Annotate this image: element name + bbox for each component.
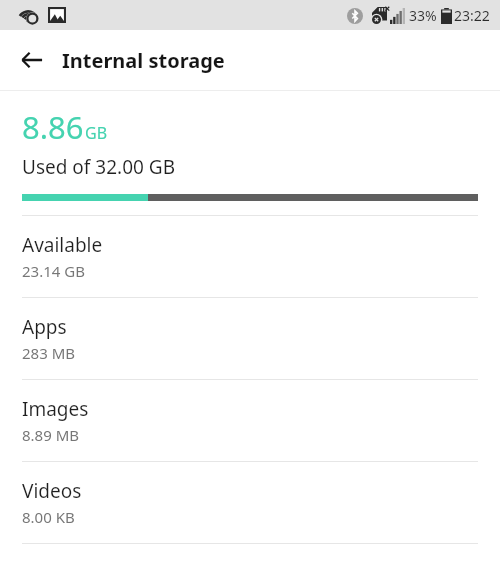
staticText: Videos [22,478,82,504]
staticText: 8.00 KB [22,507,75,527]
staticText: Apps [22,314,67,340]
staticText: 8.89 MB [22,425,80,445]
staticText: 33% [409,6,437,25]
staticText: Available [22,232,103,258]
staticText: Used of 32.00 GB [22,154,175,180]
staticText: Internal storage [62,47,225,74]
staticText: 23:22 [454,6,490,25]
staticText: GB [85,122,108,144]
button[interactable]: Images [0,380,500,461]
staticText: Images [22,396,89,422]
button[interactable]: Available [0,216,500,297]
button[interactable]: Apps [0,298,500,379]
staticText: 283 MB [22,343,75,363]
button[interactable]: Back [12,40,52,80]
staticText: 8.86 [22,106,84,148]
staticText: 23.14 GB [22,261,85,281]
button[interactable]: Videos [0,462,500,543]
